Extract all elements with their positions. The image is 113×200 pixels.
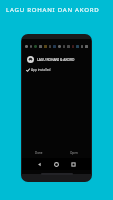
button[interactable]: Recent apps xyxy=(65,158,82,170)
button[interactable]: Open xyxy=(56,147,91,158)
staticText: LAGU ROHANI & AKORD xyxy=(37,57,75,61)
button[interactable]: Done xyxy=(22,147,56,158)
staticText: Open xyxy=(70,151,78,155)
staticText: Done xyxy=(35,151,43,155)
button[interactable]: LAGU ROHANI & AKORD xyxy=(27,52,91,66)
staticText: LAGU ROHANI DAN AKORD xyxy=(6,5,100,13)
button[interactable]: Home xyxy=(48,158,65,170)
button[interactable]: Back xyxy=(31,158,48,170)
staticText: App installed xyxy=(31,68,51,72)
